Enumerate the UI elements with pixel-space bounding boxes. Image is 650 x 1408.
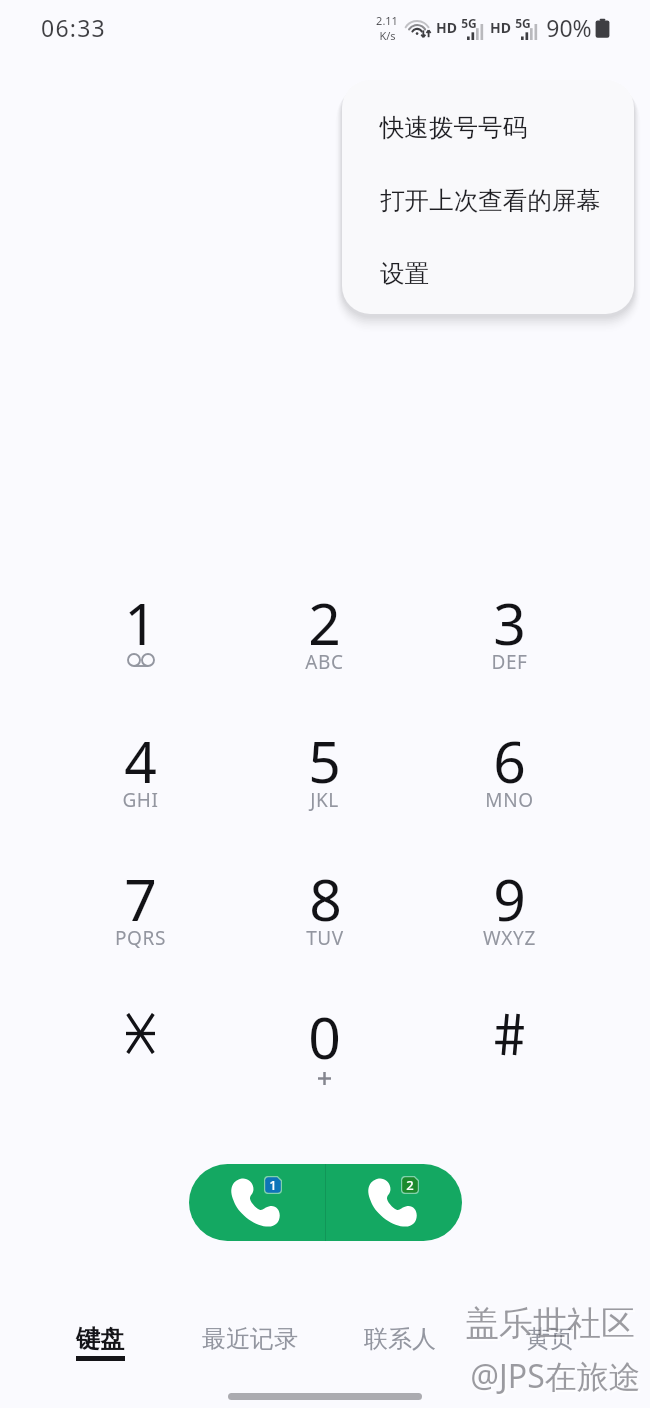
staticText: 联系人 <box>364 1324 436 1354</box>
staticText: K/s <box>379 28 396 43</box>
staticText: 2 <box>308 584 341 662</box>
staticText: WXYZ <box>483 925 536 951</box>
staticText: 1 <box>124 584 157 662</box>
staticText: 06:33 <box>41 12 106 43</box>
staticText: 盖乐世社区 <box>467 1304 637 1347</box>
button[interactable]: 9 <box>417 860 602 998</box>
staticText: 4 <box>124 722 157 800</box>
staticText: 3 <box>493 584 526 662</box>
staticText: @JPS在旅途 <box>472 1356 643 1400</box>
staticText: MNO <box>485 787 534 813</box>
staticText: 5G <box>461 15 477 31</box>
button[interactable]: 2 <box>232 584 417 722</box>
staticText: 黄页 <box>526 1324 574 1354</box>
staticText: DEF <box>491 649 528 675</box>
button[interactable]: Call with SIM 2 <box>326 1164 462 1241</box>
other: Pound <box>494 1014 525 1055</box>
staticText: 打开上次查看的屏幕 <box>380 185 601 216</box>
staticText: PQRS <box>115 925 166 951</box>
button[interactable]: 1 <box>48 584 232 722</box>
button[interactable]: Call with SIM 1 <box>189 1164 325 1241</box>
staticText: 5 <box>308 722 341 800</box>
staticText: 键盘 <box>76 1324 124 1354</box>
staticText: 快速拨号号码 <box>380 112 527 143</box>
staticText: 5G <box>515 15 531 31</box>
button[interactable]: 5 <box>232 722 417 860</box>
staticText: @JPS在旅途 <box>470 1354 641 1398</box>
button[interactable]: 设置 <box>342 237 634 310</box>
staticText: HD <box>490 18 511 37</box>
button[interactable]: 7 <box>48 860 232 998</box>
staticText: 1 <box>269 1176 277 1194</box>
staticText: 9 <box>493 860 526 938</box>
button[interactable]: 最近记录 <box>175 1324 325 1374</box>
button[interactable]: 8 <box>232 860 417 998</box>
staticText: 设置 <box>380 258 429 289</box>
button[interactable]: Star <box>48 998 232 1136</box>
button[interactable]: 6 <box>417 722 602 860</box>
button[interactable]: 黄页 <box>475 1324 625 1374</box>
staticText: JKL <box>310 787 339 813</box>
other: Wi-Fi <box>407 18 431 38</box>
button[interactable]: 键盘 <box>25 1324 175 1374</box>
staticText: 8 <box>309 860 342 938</box>
staticText: 2 <box>406 1176 414 1194</box>
staticText: 0 <box>308 998 341 1076</box>
button[interactable]: 联系人 <box>325 1324 475 1374</box>
staticText: 6 <box>493 722 526 800</box>
staticText: 盖乐世社区 <box>465 1302 635 1345</box>
button[interactable]: 0 <box>232 998 417 1136</box>
staticText: HD <box>436 18 457 37</box>
other: Star <box>126 1014 155 1053</box>
staticText: TUV <box>306 925 344 951</box>
button[interactable]: 3 <box>417 584 602 722</box>
staticText: 90% <box>546 12 592 43</box>
button[interactable]: 4 <box>48 722 232 860</box>
staticText: GHI <box>122 787 159 813</box>
button[interactable]: Pound <box>417 998 602 1136</box>
button[interactable]: 打开上次查看的屏幕 <box>342 164 634 237</box>
staticText: 7 <box>124 860 157 938</box>
staticText: ABC <box>305 649 344 675</box>
staticText: 最近记录 <box>202 1324 298 1354</box>
other: Voicemail <box>127 650 155 670</box>
staticText: 2.11 <box>376 13 398 28</box>
button[interactable]: 快速拨号号码 <box>342 91 634 164</box>
